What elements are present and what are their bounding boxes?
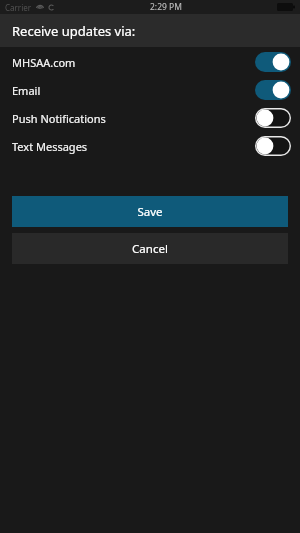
staticText: Save — [137, 204, 163, 220]
staticText: Cancel — [132, 241, 168, 257]
staticText: 2:29 PM — [150, 1, 182, 13]
staticText: MHSAA.com — [12, 55, 76, 70]
button[interactable]: Toggle on — [255, 52, 291, 72]
button[interactable]: Save — [12, 196, 288, 227]
staticText: Push Notifications — [12, 111, 106, 126]
button[interactable]: MHSAA.com — [0, 48, 300, 76]
button[interactable]: Toggle on — [255, 80, 291, 100]
button[interactable]: Toggle off — [255, 108, 291, 128]
button[interactable]: Cancel — [12, 233, 288, 264]
staticText: Text Messages — [12, 139, 88, 154]
staticText: Receive updates via: — [12, 22, 136, 40]
button[interactable]: Text Messages — [0, 132, 300, 160]
staticText: Email — [12, 83, 41, 98]
staticText: Carrier — [5, 2, 32, 13]
button[interactable]: Email — [0, 76, 300, 104]
button[interactable]: Push Notifications — [0, 104, 300, 132]
button[interactable]: Toggle off — [255, 136, 291, 156]
